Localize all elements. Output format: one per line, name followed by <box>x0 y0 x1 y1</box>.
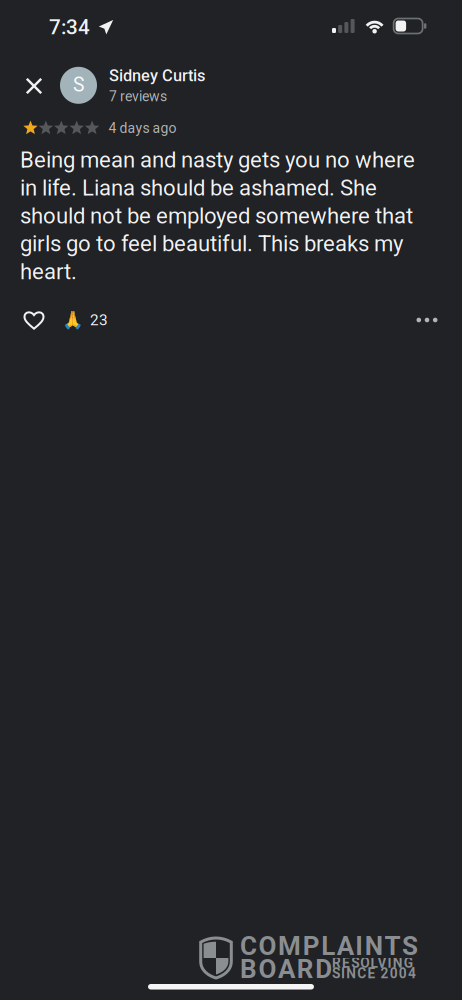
staticText: 7:34 <box>49 15 90 39</box>
staticText: 🙏 <box>62 310 84 330</box>
staticText: Being mean and nasty gets you no where i… <box>20 147 415 285</box>
staticText: 23 <box>90 311 108 329</box>
staticText: 4 days ago <box>109 120 177 136</box>
button[interactable]: More options <box>409 302 445 338</box>
staticText: 7 reviews <box>109 88 167 105</box>
button[interactable]: S <box>60 66 205 105</box>
staticText: COMPLAINTS <box>240 931 418 961</box>
button[interactable]: Close <box>12 64 56 108</box>
button[interactable]: Like <box>15 302 53 338</box>
button[interactable]: 🙏 <box>62 302 108 338</box>
staticText: RESOLVING <box>332 955 413 971</box>
staticText: S <box>73 73 84 96</box>
staticText: BOARD <box>240 954 332 984</box>
staticText: SINCE 2004 <box>332 965 416 982</box>
staticText: Sidney Curtis <box>109 66 205 85</box>
